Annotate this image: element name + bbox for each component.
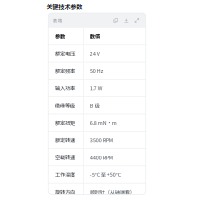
staticText: 3500 RPM [90, 136, 113, 144]
staticText: 数值 [90, 32, 100, 40]
button[interactable]: 复制表格 [113, 18, 118, 23]
staticText: 额定转速 [55, 136, 75, 144]
staticText: 表格 [53, 17, 63, 24]
staticText: 关键技术参数 [46, 2, 82, 11]
button[interactable]: 全屏显示 [135, 18, 139, 23]
staticText: 额定频率 [55, 67, 75, 75]
staticText: 1.7 W [90, 84, 103, 92]
staticText: 4400 RPM [90, 153, 113, 161]
staticText: B 级 [90, 101, 100, 109]
staticText: 工作温度 [55, 171, 75, 178]
staticText: 6.8 mN·m [90, 119, 117, 126]
staticText: 24 V [90, 50, 100, 57]
staticText: 50 Hz [90, 67, 104, 75]
button[interactable]: 下载表格 [124, 18, 129, 23]
staticText: 绝缘等级 [55, 101, 75, 109]
staticText: 空载转速 [55, 153, 75, 161]
staticText: -5°C 至 +50°C [90, 171, 121, 178]
staticText: 额定扭矩 [55, 119, 75, 126]
staticText: 额定电压 [55, 50, 75, 57]
staticText: 输入功率 [55, 84, 75, 92]
staticText: 参数 [55, 32, 65, 40]
staticText: 顺时针（从轴端看） [90, 188, 135, 196]
staticText: 旋转方向 [55, 188, 75, 196]
